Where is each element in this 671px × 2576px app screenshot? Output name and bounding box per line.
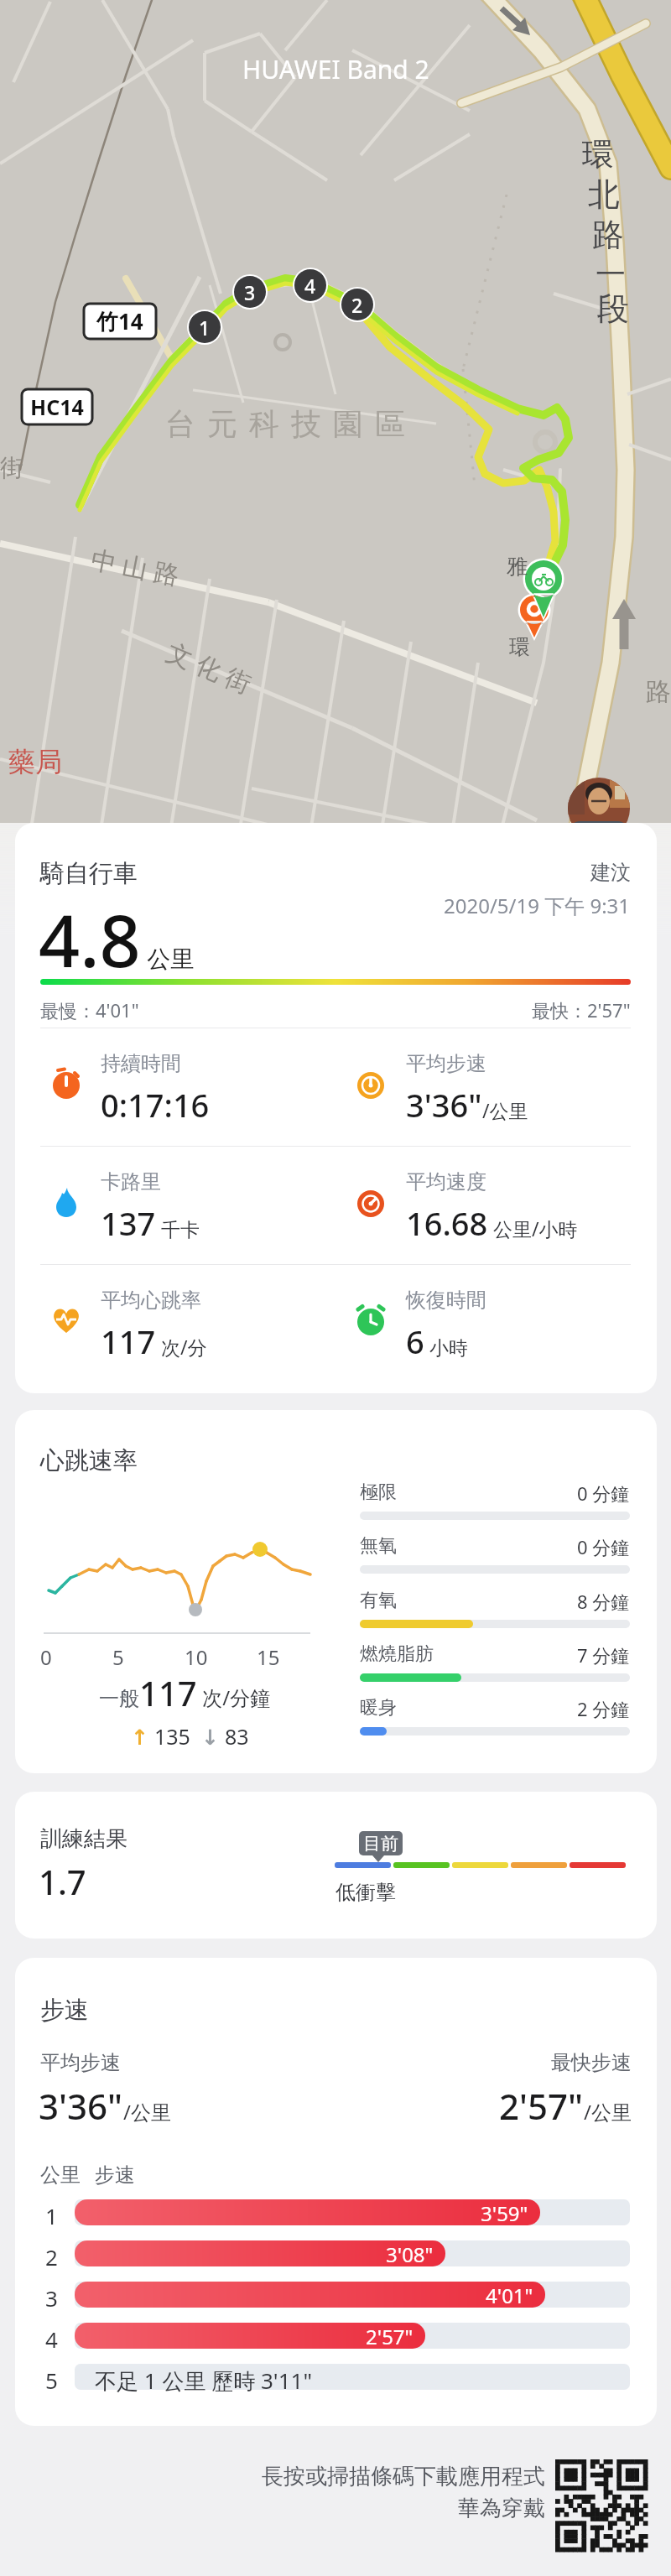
staticText: 1 (199, 315, 211, 341)
staticText: 3 (244, 279, 256, 305)
staticText: 0 (40, 1643, 52, 1671)
staticText: 千卡 (156, 1215, 200, 1241)
staticText: 0 分鐘 (577, 1534, 630, 1559)
staticText: 恢復時間 (406, 1288, 486, 1313)
staticText: 步速 (95, 2162, 135, 2188)
staticText: 一般 (99, 1686, 139, 1711)
button[interactable]: 4 (294, 269, 326, 301)
staticText: 次/分 (156, 1334, 207, 1360)
staticText: 135 (154, 1722, 201, 1751)
staticText: 平均心跳率 (101, 1288, 201, 1313)
staticText: 4 (304, 273, 316, 299)
staticText: 0:17:16 (101, 1083, 210, 1127)
staticText: 建汶 (590, 860, 631, 885)
staticText: 環 (582, 134, 614, 174)
staticText: HUAWEI Band 2 (242, 52, 429, 86)
staticText: 卡路里 (101, 1169, 161, 1194)
staticText: 2'57" (366, 2323, 414, 2349)
staticText: 137 (101, 1201, 156, 1245)
staticText: 藥局 (8, 745, 62, 778)
staticText: 4'01" (486, 2282, 533, 2308)
staticText: 6 (406, 1319, 424, 1363)
staticText: /公里 (482, 1097, 528, 1123)
staticText: 次/分鐘 (197, 1684, 271, 1711)
staticText: 2 (45, 2242, 58, 2272)
staticText: 步速 (40, 1995, 89, 2026)
staticText: /公里 (123, 2098, 171, 2126)
staticText: 公里 (141, 942, 195, 974)
button[interactable] (555, 2459, 648, 2552)
staticText: 5 (112, 1643, 124, 1671)
staticText: 5 (45, 2365, 58, 2395)
staticText: 2020/5/19 下午 9:31 (444, 892, 631, 919)
staticText: 路 (646, 676, 671, 708)
staticText: 目前 (363, 1833, 398, 1855)
staticText: 騎自行車 (40, 858, 138, 889)
staticText: 台元科技園區 (159, 405, 411, 443)
button[interactable]: 目前 (359, 1831, 403, 1855)
staticText: 83 (225, 1722, 249, 1751)
staticText: 3'36" (39, 2082, 123, 2130)
staticText: ↓ (201, 1722, 225, 1751)
staticText: 一 (596, 255, 626, 293)
staticText: 燃燒脂肪 (360, 1642, 434, 1666)
staticText: 心跳速率 (40, 1445, 138, 1476)
staticText: 極限 (360, 1481, 397, 1504)
staticText: 最快步速 (551, 2050, 632, 2075)
staticText: 段 (597, 289, 629, 329)
button[interactable]: 2 (341, 289, 373, 320)
staticText: 2'57" (499, 2082, 584, 2130)
staticText: 最慢：4'01" (40, 997, 139, 1023)
staticText: 0 分鐘 (577, 1481, 630, 1506)
staticText: 3'59" (481, 2199, 528, 2225)
staticText: 中山路 (85, 543, 185, 593)
staticText: 平均速度 (406, 1169, 486, 1194)
staticText: 訓練結果 (40, 1825, 127, 1853)
staticText: 無氧 (360, 1534, 397, 1558)
staticText: 竹14 (96, 306, 143, 336)
staticText: 小時 (424, 1334, 468, 1360)
staticText: 有氧 (360, 1589, 397, 1612)
staticText: 1 (45, 2201, 58, 2230)
staticText: 10 (185, 1643, 208, 1671)
staticText: 低衝擊 (335, 1880, 396, 1905)
staticText: 華為穿戴 (458, 2495, 545, 2522)
staticText: 街 (0, 453, 23, 482)
staticText: 8 分鐘 (577, 1589, 630, 1614)
staticText: 暖身 (360, 1696, 397, 1720)
staticText: 不足 1 公里 歷時 3'11" (95, 2365, 312, 2396)
staticText: 雅 (507, 554, 528, 580)
staticText: 平均步速 (406, 1051, 486, 1076)
button[interactable] (568, 778, 630, 840)
staticText: 3'36" (406, 1083, 482, 1127)
staticText: 117 (101, 1319, 156, 1363)
staticText: /公里 (584, 2098, 632, 2126)
staticText: 3'08" (386, 2240, 434, 2266)
staticText: 路 (592, 215, 624, 255)
staticText: 文化街 (159, 635, 259, 702)
staticText: 15 (257, 1643, 280, 1671)
staticText: 長按或掃描條碼下載應用程式 (262, 2463, 545, 2490)
staticText: 117 (139, 1670, 197, 1715)
staticText: ↑ (131, 1722, 154, 1751)
staticText: HC14 (30, 393, 84, 421)
staticText: 公里 (40, 2162, 81, 2188)
staticText: 4 (45, 2324, 58, 2354)
staticText: 最快：2'57" (532, 997, 631, 1023)
staticText: 3 (45, 2283, 58, 2313)
staticText: 環 (509, 634, 530, 660)
staticText: 北 (588, 174, 620, 215)
staticText: 7 分鐘 (577, 1642, 630, 1668)
button[interactable]: 1 (189, 311, 221, 343)
staticText: 4.8 (39, 890, 141, 988)
staticText: 2 分鐘 (577, 1696, 630, 1721)
staticText: 公里/小時 (488, 1215, 578, 1241)
staticText: 平均步速 (40, 2050, 121, 2075)
button[interactable]: 3 (234, 276, 266, 308)
staticText: 1.7 (39, 1859, 86, 1904)
staticText: 16.68 (406, 1201, 488, 1245)
staticText: 持續時間 (101, 1051, 181, 1076)
staticText: 2 (351, 292, 363, 318)
